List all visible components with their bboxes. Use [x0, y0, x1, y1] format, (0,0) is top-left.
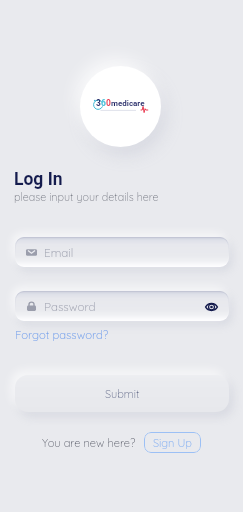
staticText: Submit	[105, 387, 140, 401]
other: Show password	[205, 302, 218, 312]
button[interactable]: Forgot password?	[15, 328, 109, 342]
staticText: Email	[44, 245, 74, 260]
staticText: 0	[106, 98, 111, 108]
button[interactable]: Password	[15, 291, 229, 321]
staticText: 3	[96, 98, 101, 108]
button[interactable]: Submit	[15, 375, 229, 412]
staticText: medicare	[111, 99, 145, 108]
button[interactable]: Email	[15, 237, 229, 267]
staticText: Forgot password?	[15, 328, 109, 342]
staticText: 6	[101, 98, 106, 108]
staticText: please input your details here	[14, 190, 159, 204]
staticText: Sign Up	[153, 436, 192, 450]
staticText: You are new here?	[42, 436, 136, 450]
staticText: Password	[44, 299, 96, 314]
button[interactable]: Sign Up	[144, 432, 201, 453]
staticText: Log In	[14, 169, 63, 190]
